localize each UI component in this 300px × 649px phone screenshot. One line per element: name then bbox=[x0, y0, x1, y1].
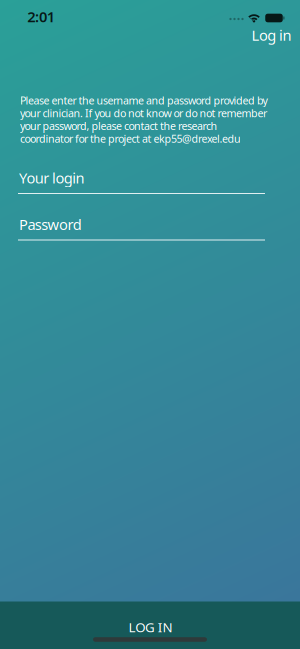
staticText: Your login bbox=[19, 168, 85, 187]
button[interactable]: LOG IN bbox=[0, 601, 300, 649]
textField[interactable]: Your login bbox=[18, 168, 265, 194]
secureTextField[interactable]: Password bbox=[18, 214, 265, 240]
button[interactable]: Log in bbox=[251, 25, 291, 45]
staticText: Log in bbox=[251, 25, 291, 45]
staticText: Please enter the username and password p… bbox=[20, 93, 267, 146]
staticText: 2:01 bbox=[27, 7, 55, 26]
staticText: LOG IN bbox=[128, 618, 172, 636]
staticText: Password bbox=[19, 214, 82, 234]
